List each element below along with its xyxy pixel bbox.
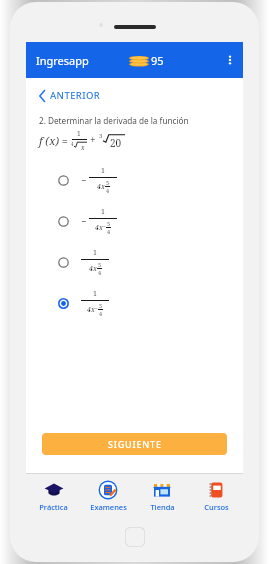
staticText: 4x [97,182,105,192]
button[interactable]: Cursos [189,474,243,518]
staticText: x [81,143,85,152]
button[interactable]: ANTERIOR [36,87,104,104]
staticText: 3 [99,132,103,140]
staticText: 4x [89,264,97,274]
button[interactable]: Práctica [26,474,81,518]
staticText: + [90,133,96,147]
staticText: − [95,305,98,312]
staticText: 1 [77,129,81,138]
button[interactable]: − [34,206,235,236]
staticText: SIGUIENTE [108,438,162,450]
staticText: 95 [151,53,164,68]
staticText: − [81,215,87,227]
staticText: 20 [110,136,122,150]
staticText: 5 [98,261,102,268]
button[interactable]: − [34,165,235,195]
staticText: 5 [99,302,103,309]
staticText: − [81,174,87,186]
staticText: 1 [93,289,97,299]
staticText: 4x [95,223,103,233]
staticText: Ingresapp [36,53,89,68]
button[interactable]: More options [217,47,243,73]
button[interactable]: 1 [34,247,235,277]
staticText: 4 [107,228,111,235]
button[interactable]: Tienda [135,474,189,518]
staticText: 2. Determinar la derivada de la función [39,115,189,126]
staticText: 4 [99,310,103,317]
staticText: 4 [98,269,102,276]
button[interactable]: 1 [34,288,235,318]
staticText: Cursos [204,502,229,512]
staticText: 1 [101,207,105,217]
staticText: 1 [101,166,105,176]
staticText: 4x [87,305,95,315]
staticText: 5 [107,220,111,227]
button[interactable]: Examenes [81,474,135,518]
staticText: 1 [93,248,97,258]
staticText: ANTERIOR [50,89,101,102]
staticText: − [103,223,106,230]
staticText: 4 [106,187,110,194]
staticText: f (x) = [39,133,68,148]
staticText: Examenes [90,502,127,512]
button[interactable]: SIGUIENTE [42,433,227,455]
staticText: Tienda [150,502,175,512]
staticText: Práctica [39,502,68,512]
staticText: 4 [71,141,74,147]
staticText: 5 [106,179,110,186]
